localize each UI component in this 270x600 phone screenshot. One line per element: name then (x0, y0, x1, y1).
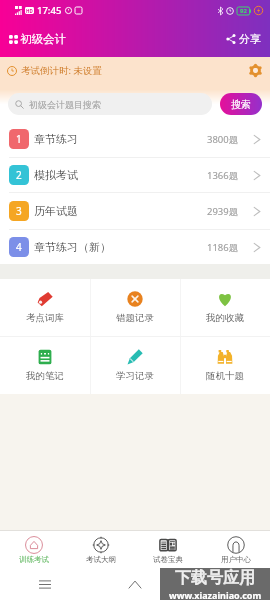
button[interactable]: 3 (0, 193, 270, 229)
staticText: 搜索 (231, 98, 251, 111)
staticText: 用户中心 (221, 555, 251, 564)
staticText: 3800题 (207, 133, 239, 146)
button[interactable]: Settings (249, 64, 262, 77)
staticText: 我的收藏 (206, 312, 244, 324)
staticText: 初级会计题目搜索 (29, 99, 101, 110)
button[interactable]: 我的笔记 (0, 337, 90, 394)
staticText: 分享 (239, 32, 261, 46)
staticText: 错题记录 (116, 312, 154, 324)
staticText: 17:45 (37, 4, 62, 17)
staticText: 考试大纲 (86, 555, 116, 564)
staticText: 学习记录 (116, 370, 154, 382)
staticText: 模拟考试 (34, 168, 78, 182)
button[interactable]: 学习记录 (90, 337, 180, 394)
button[interactable]: 2 (0, 158, 270, 192)
staticText: HD (26, 8, 33, 14)
staticText: 1 (16, 132, 22, 146)
button[interactable]: Back (214, 573, 236, 595)
button[interactable]: 我的收藏 (180, 279, 270, 336)
button[interactable]: 错题记录 (90, 279, 180, 336)
staticText: 考试倒计时: 未设置 (21, 64, 103, 77)
button[interactable]: 4 (0, 230, 270, 264)
button[interactable]: 训练考试 (0, 531, 67, 568)
staticText: 2939题 (207, 205, 239, 218)
button[interactable]: 考点词库 (0, 279, 90, 336)
staticText: 章节练习 (34, 132, 78, 146)
button[interactable]: 初级会计题目搜索 (8, 93, 212, 115)
staticText: 试卷宝典 (153, 555, 183, 564)
button[interactable]: 分享 (226, 32, 261, 46)
button[interactable]: Recents (34, 573, 56, 595)
staticText: 2 (16, 168, 22, 182)
staticText: 92 (240, 7, 247, 15)
staticText: 随机十题 (206, 370, 244, 382)
staticText: 初级会计 (20, 32, 66, 46)
button[interactable]: 搜索 (220, 93, 262, 115)
button[interactable]: 1 (0, 121, 270, 157)
button[interactable]: 用户中心 (202, 531, 270, 568)
button[interactable]: 考试大纲 (67, 531, 134, 568)
staticText: 章节练习（新） (34, 240, 111, 254)
staticText: 3 (16, 204, 22, 218)
staticText: 1186题 (207, 241, 239, 254)
button[interactable]: Home (124, 573, 146, 595)
button[interactable]: 试卷宝典 (134, 531, 202, 568)
staticText: 历年试题 (34, 204, 78, 218)
staticText: 训练考试 (19, 555, 49, 564)
staticText: 考点词库 (26, 312, 64, 324)
staticText: 4 (16, 240, 22, 254)
staticText: 1366题 (207, 169, 239, 182)
staticText: www.xiazainiao.com (169, 589, 262, 600)
staticText: 下载号应用 (175, 568, 255, 588)
button[interactable]: 随机十题 (180, 337, 270, 394)
staticText: 我的笔记 (26, 370, 64, 382)
